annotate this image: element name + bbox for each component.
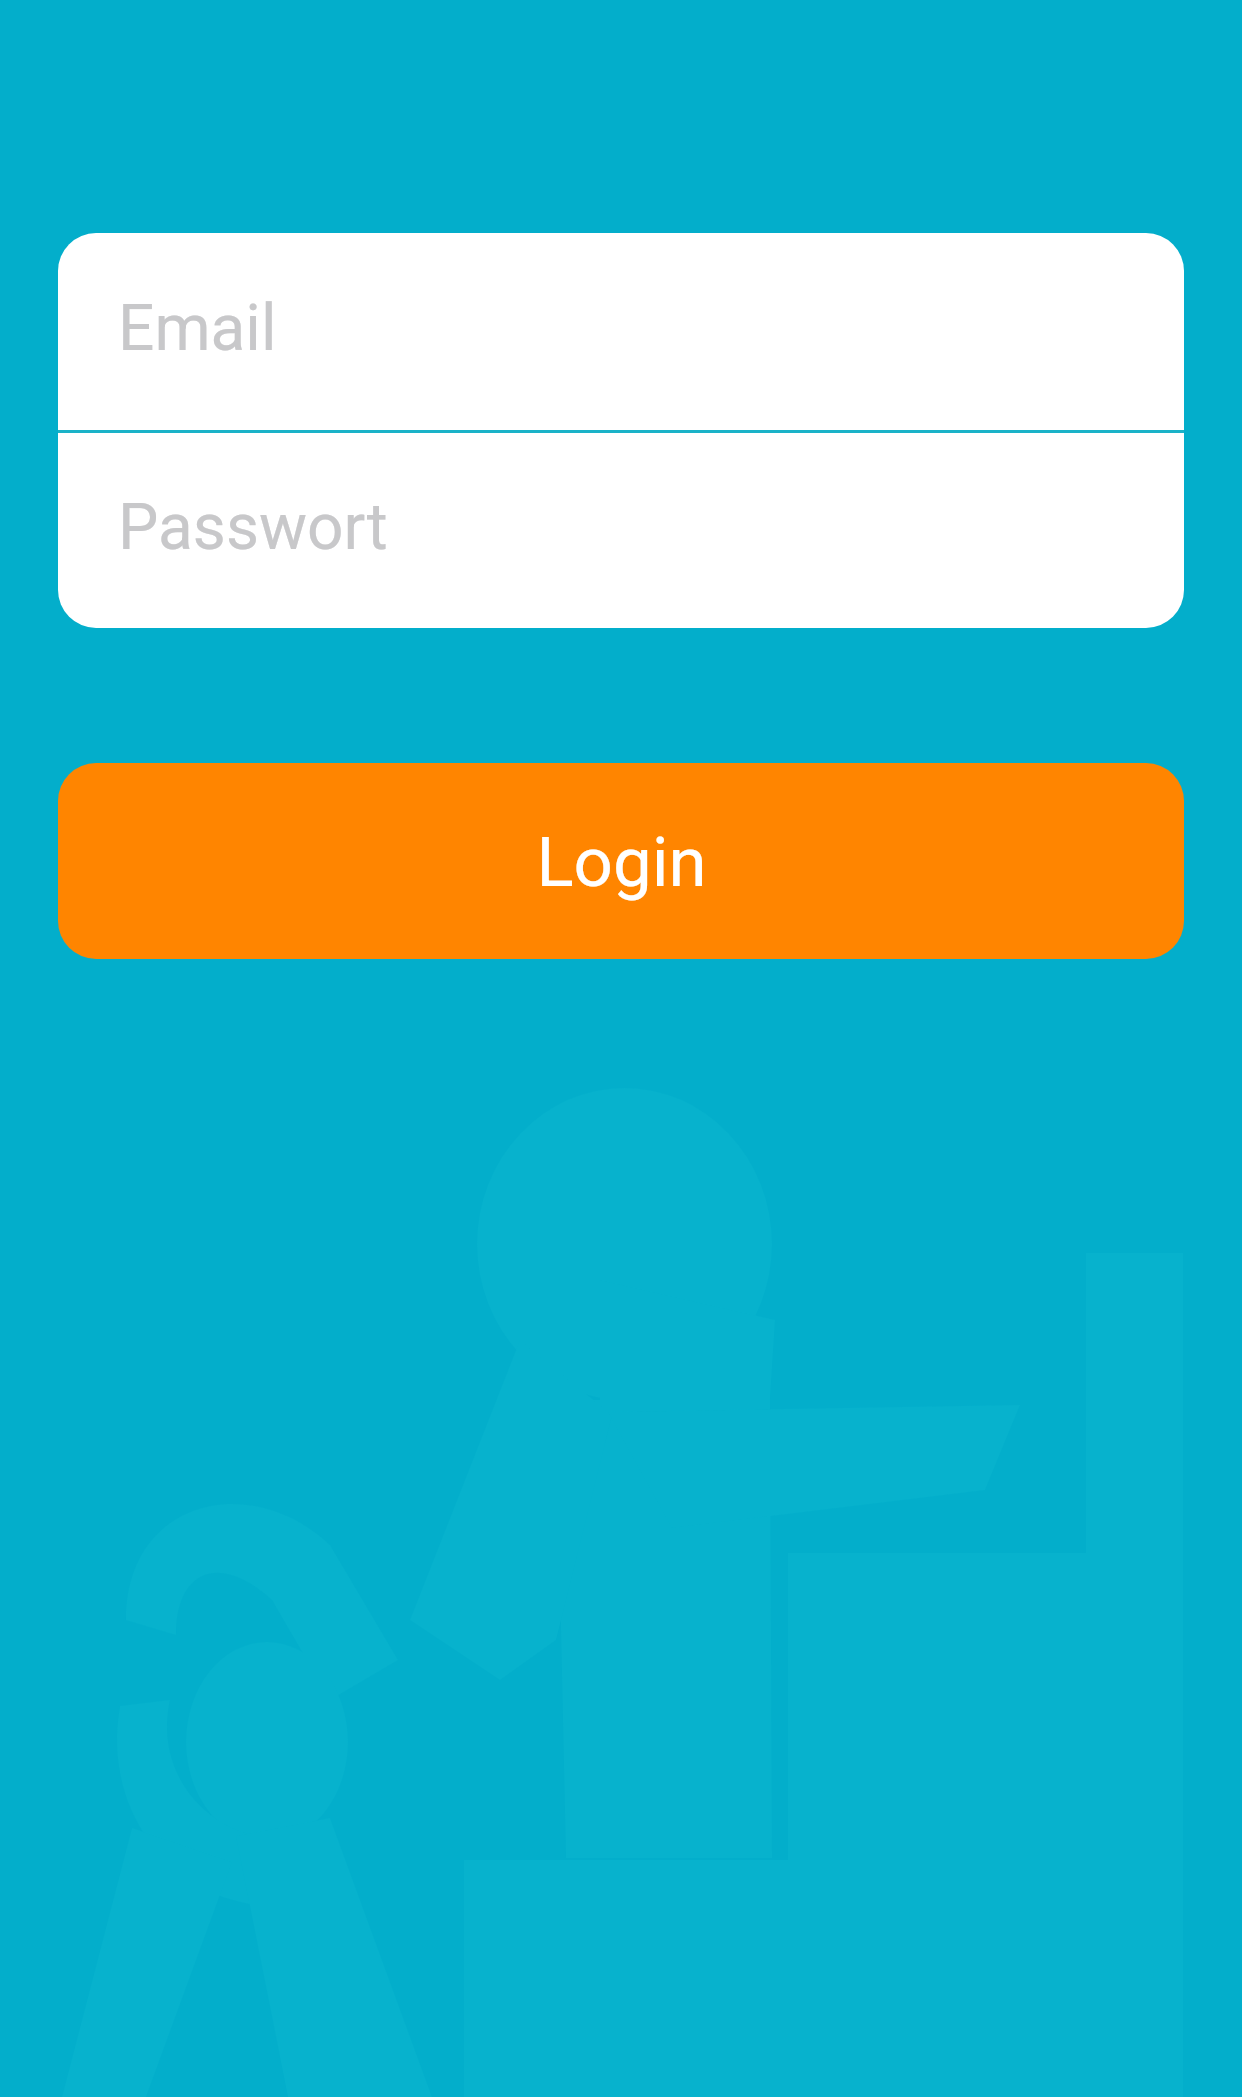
button[interactable]: Passwort (58, 433, 1184, 628)
staticText: Passwort (118, 490, 388, 565)
staticText: Login (536, 822, 707, 903)
button[interactable]: Email (58, 233, 1184, 430)
button[interactable]: Login (58, 763, 1184, 959)
staticText: Email (118, 291, 277, 366)
